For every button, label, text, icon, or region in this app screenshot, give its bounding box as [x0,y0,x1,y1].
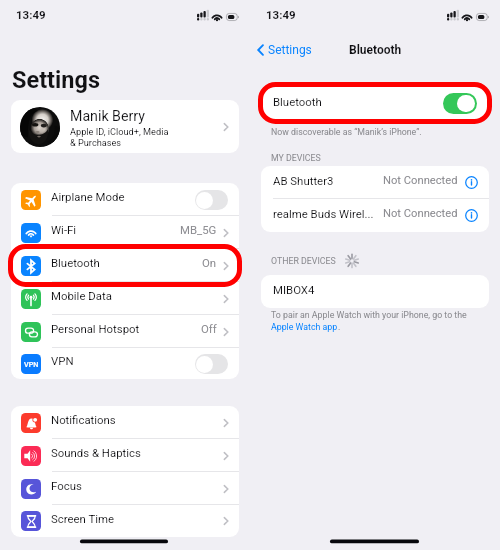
staticText: Not Connected [383,207,458,220]
button[interactable]: Airplane Mode [11,183,239,216]
staticText: Not Connected [383,174,458,187]
staticText: MY DEVICES [271,153,321,163]
button[interactable]: Sounds & Haptics [11,439,239,472]
staticText: AB Shutter3 [273,174,334,187]
button[interactable]: Personal Hotspot [11,315,239,348]
staticText: MB_5G [180,223,217,236]
staticText: 13:49 [16,8,46,21]
button[interactable]: More Info [465,209,478,222]
staticText: Bluetooth [51,256,100,269]
button[interactable]: MIBOX4 [261,275,489,308]
button[interactable]: realme Buds Wirel... [261,199,489,232]
button[interactable]: VPN [11,348,239,379]
staticText: MIBOX4 [273,283,315,296]
staticText: Bluetooth [349,43,402,57]
button[interactable]: Toggle [195,354,228,374]
button[interactable]: Mobile Data [11,282,239,315]
button[interactable]: Toggle [195,190,228,210]
staticText: 13:49 [266,8,296,21]
staticText: . [338,322,341,332]
button[interactable]: Apple Watch app [271,322,338,332]
staticText: Apple ID, iCloud+, Media & Purchases [70,126,169,148]
staticText: Sounds & Haptics [51,446,141,459]
staticText: Bluetooth [273,95,322,108]
staticText: Wi-Fi [51,223,77,236]
button[interactable]: Bluetooth [11,249,239,282]
staticText: Airplane Mode [51,190,125,203]
button[interactable]: Wi-Fi [11,216,239,249]
staticText: Manik Berry [70,108,145,125]
button[interactable]: More Info [465,176,478,189]
staticText: realme Buds Wirel... [273,207,374,220]
staticText: Focus [51,479,82,492]
staticText: On [202,256,217,269]
staticText: Screen Time [51,512,115,525]
staticText: To pair an Apple Watch with your iPhone,… [271,310,467,320]
button[interactable]: Screen Time [11,505,239,537]
staticText: VPN [24,360,39,368]
staticText: Settings [12,66,100,94]
staticText: Notifications [51,413,116,426]
staticText: OTHER DEVICES [271,256,336,266]
button[interactable]: Notifications [11,406,239,439]
button[interactable]: Settings [250,41,318,59]
button[interactable]: Focus [11,472,239,505]
button[interactable]: Manik Berry [11,100,239,153]
staticText: VPN [51,354,74,367]
button[interactable]: Bluetooth toggle [443,93,477,114]
staticText: Personal Hotspot [51,322,140,335]
button[interactable]: AB Shutter3 [261,166,489,199]
button[interactable]: Bluetooth [261,86,489,121]
staticText: Settings [268,43,312,57]
staticText: Now discoverable as “Manik’s iPhone”. [271,127,422,137]
staticText: Mobile Data [51,289,112,302]
staticText: Off [201,322,217,335]
